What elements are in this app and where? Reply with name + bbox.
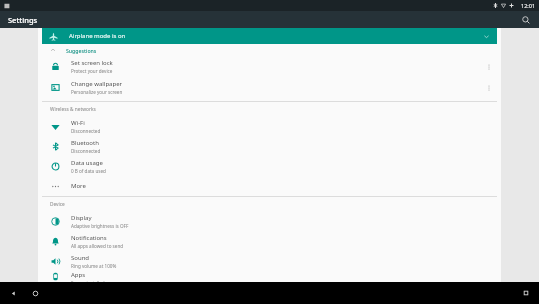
- staticText: Wi‑Fi: [71, 119, 85, 127]
- button[interactable]: Set screen lock: [38, 56, 501, 77]
- staticText: Settings: [8, 15, 38, 25]
- staticText: Suggestions: [66, 47, 97, 54]
- staticText: Airplane mode is on: [69, 32, 126, 40]
- button[interactable]: Sound: [38, 251, 501, 271]
- staticText: Sound: [71, 254, 90, 262]
- button[interactable]: Suggestions: [38, 44, 501, 56]
- button[interactable]: More options: [483, 82, 495, 94]
- staticText: Personalize your screen: [71, 89, 123, 95]
- button[interactable]: Recent apps: [517, 284, 535, 302]
- staticText: Adaptive brightness is OFF: [71, 223, 129, 229]
- staticText: More: [71, 182, 86, 190]
- staticText: Change wallpaper: [71, 80, 122, 88]
- staticText: Data usage: [71, 159, 103, 167]
- button[interactable]: Wi‑Fi: [38, 116, 501, 136]
- staticText: All apps allowed to send: [71, 243, 124, 249]
- staticText: Disconnected: [71, 128, 101, 134]
- button[interactable]: Display: [38, 211, 501, 231]
- button[interactable]: More: [38, 176, 501, 196]
- staticText: Wireless & networks: [50, 106, 96, 113]
- button[interactable]: Bluetooth: [38, 136, 501, 156]
- button[interactable]: Home: [26, 284, 44, 302]
- button[interactable]: Back: [4, 284, 22, 302]
- staticText: 12:01: [521, 2, 536, 9]
- staticText: Disconnected: [71, 148, 101, 154]
- button[interactable]: Data usage: [38, 156, 501, 176]
- staticText: Protect your device: [71, 68, 113, 74]
- staticText: Notifications: [71, 234, 107, 242]
- staticText: Device: [50, 201, 65, 208]
- button[interactable]: Notifications: [38, 231, 501, 251]
- staticText: Ring volume at 100%: [71, 263, 117, 269]
- button[interactable]: Change wallpaper: [38, 77, 501, 98]
- button[interactable]: Search: [519, 13, 533, 27]
- button[interactable]: Apps: [38, 271, 501, 282]
- button[interactable]: More options: [483, 61, 495, 73]
- staticText: Apps: [71, 271, 86, 279]
- staticText: 0 B of data used: [71, 168, 106, 174]
- button[interactable]: Airplane mode is on: [42, 28, 497, 44]
- staticText: 5 apps installed: [71, 280, 105, 282]
- staticText: Bluetooth: [71, 139, 99, 147]
- staticText: Display: [71, 214, 92, 222]
- staticText: Set screen lock: [71, 59, 113, 67]
